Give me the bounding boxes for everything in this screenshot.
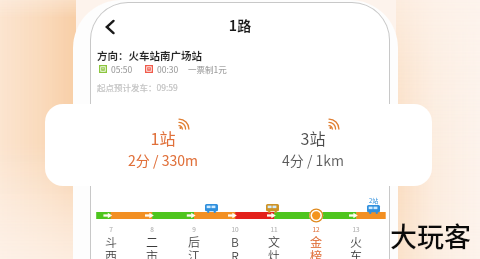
staticText: 12	[304, 224, 328, 233]
button[interactable]: Back	[93, 10, 127, 44]
staticText: 2分 / 330m	[83, 150, 243, 170]
staticText: 二	[140, 233, 164, 250]
staticText: B	[223, 233, 247, 250]
staticText: 起点预计发车：09:59	[97, 81, 178, 93]
staticText: 市	[140, 247, 164, 259]
staticText: 05:50	[111, 63, 133, 75]
staticText: 11	[262, 224, 286, 233]
staticText: 2站	[369, 196, 379, 205]
staticText: 3站	[233, 126, 393, 149]
staticText: 1站	[83, 126, 243, 149]
staticText: 榜	[304, 247, 328, 259]
staticText: 方向：火车站南广场站	[97, 48, 202, 63]
staticText: 10	[223, 224, 247, 233]
staticText: 后	[182, 233, 206, 250]
button[interactable]: 3站	[233, 104, 393, 186]
staticText: 江	[182, 247, 206, 259]
staticText: 7	[99, 224, 123, 233]
staticText: R	[223, 247, 247, 259]
staticText: 文	[262, 233, 286, 250]
staticText: 车	[344, 247, 368, 259]
staticText: 斗	[99, 233, 123, 250]
staticText: 一票制1元	[188, 63, 227, 75]
staticText: 1路	[91, 15, 389, 35]
staticText: 火	[344, 233, 368, 250]
staticText: 13	[344, 224, 368, 233]
staticText: 金	[304, 233, 328, 250]
staticText: 大玩客	[390, 216, 471, 255]
button[interactable]: 1站	[83, 104, 243, 186]
staticText: 灶	[262, 247, 286, 259]
staticText: 西	[99, 247, 123, 259]
staticText: 8	[140, 224, 164, 233]
button[interactable]: 1站	[45, 104, 432, 186]
staticText: 9	[182, 224, 206, 233]
staticText: 4分 / 1km	[233, 150, 393, 170]
staticText: 00:30	[157, 63, 179, 75]
